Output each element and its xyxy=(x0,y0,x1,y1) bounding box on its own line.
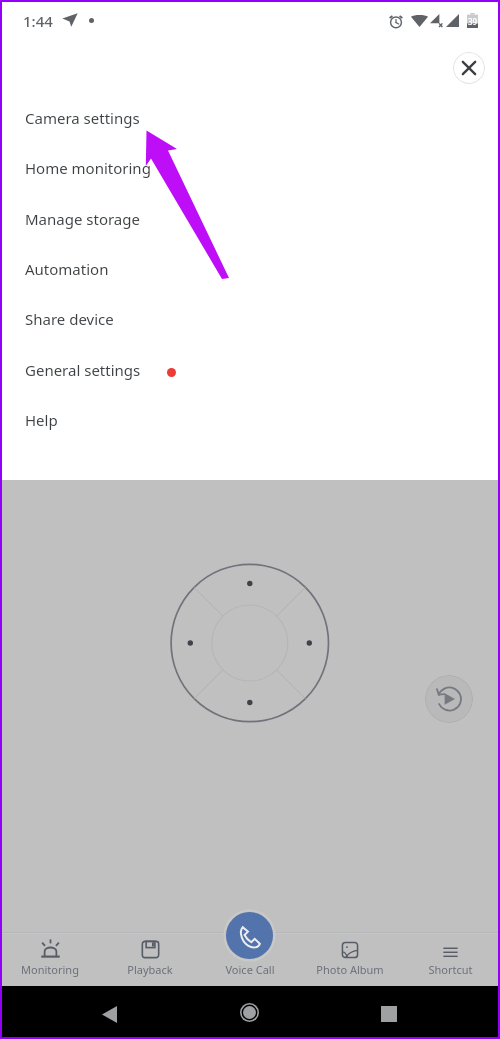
button[interactable]: Close xyxy=(453,52,485,84)
button[interactable]: Home xyxy=(229,992,270,1033)
button[interactable]: Back xyxy=(88,993,130,1035)
staticText: Help xyxy=(25,410,58,430)
staticText: 39 xyxy=(467,16,478,27)
button[interactable]: Replay xyxy=(425,675,473,723)
button[interactable]: Help xyxy=(0,400,500,440)
button[interactable]: Home monitoring xyxy=(0,148,500,188)
button[interactable]: Automation xyxy=(0,249,500,289)
button[interactable]: Share device xyxy=(0,299,500,339)
button[interactable]: Recent apps xyxy=(368,993,409,1034)
staticText: Share device xyxy=(25,309,114,329)
staticText: Monitoring xyxy=(21,962,79,977)
button[interactable]: Voice Call xyxy=(200,932,300,986)
staticText: General settings xyxy=(25,360,141,380)
button[interactable]: Monitoring xyxy=(0,932,100,986)
button[interactable]: Camera settings xyxy=(0,98,500,138)
staticText: Automation xyxy=(25,259,109,279)
button[interactable]: Playback xyxy=(100,932,200,986)
button[interactable]: General settings xyxy=(0,350,500,390)
staticText: Camera settings xyxy=(25,108,140,128)
staticText: Playback xyxy=(127,962,173,977)
button[interactable]: Shortcut xyxy=(400,932,500,986)
staticText: Voice Call xyxy=(225,962,275,977)
staticText: Photo Album xyxy=(316,962,384,977)
button[interactable]: Voice Call xyxy=(226,912,273,959)
staticText: Shortcut xyxy=(428,962,473,977)
staticText: 1:44 xyxy=(23,11,53,31)
staticText: Manage storage xyxy=(25,209,140,229)
button[interactable]: Photo Album xyxy=(300,932,400,986)
staticText: Home monitoring xyxy=(25,158,151,178)
button[interactable]: Manage storage xyxy=(0,199,500,239)
